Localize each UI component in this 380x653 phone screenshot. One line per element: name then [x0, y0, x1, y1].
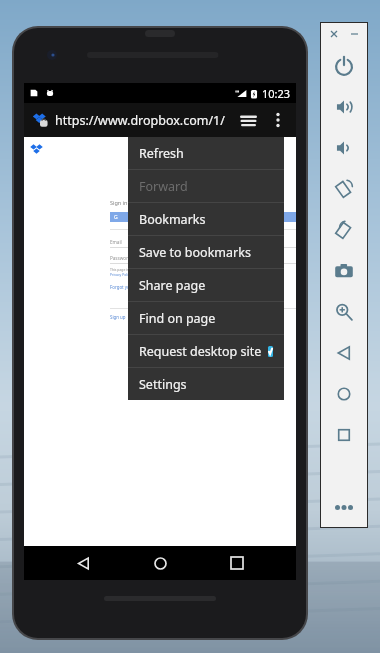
button[interactable]: Minimize — [347, 27, 361, 41]
button[interactable]: More — [321, 487, 367, 527]
staticText: Request desktop site — [139, 343, 262, 360]
staticText: Forgot your password? — [110, 284, 158, 290]
button[interactable]: Rotate right — [321, 209, 367, 250]
button[interactable]: Request desktop site — [128, 335, 284, 367]
staticText: Refresh — [139, 145, 184, 162]
button[interactable]: G — [110, 212, 296, 222]
button[interactable]: Zoom — [321, 291, 367, 332]
button[interactable]: Home — [321, 373, 367, 414]
button[interactable]: Settings — [128, 368, 284, 400]
staticText: Email — [110, 239, 122, 245]
button[interactable]: Power — [321, 45, 367, 86]
staticText: Save to bookmarks — [139, 244, 251, 261]
button[interactable]: Recent apps — [321, 414, 367, 455]
button[interactable]: More options — [263, 105, 293, 135]
button[interactable]: Home — [142, 546, 178, 580]
button[interactable]: Tabs — [233, 105, 263, 135]
staticText: Sign in to Dropbox — [110, 199, 159, 206]
button[interactable]: Volume up — [321, 86, 367, 127]
staticText: Privacy Policy and Terms — [110, 272, 149, 277]
button[interactable]: Volume down — [321, 127, 367, 168]
button[interactable]: Recent apps — [219, 546, 255, 580]
button[interactable]: Save to bookmarks — [128, 236, 284, 268]
button[interactable]: Find on page — [128, 302, 284, 334]
staticText: https://www.dropbox.com/1/con — [55, 112, 233, 129]
button[interactable]: Forward — [128, 170, 284, 202]
staticText: G — [114, 214, 118, 221]
button[interactable]: Take screenshot — [321, 250, 367, 291]
staticText: Share page — [139, 277, 206, 294]
staticText: Password — [110, 255, 131, 261]
staticText: 10:23 — [262, 86, 291, 101]
staticText: Forward — [139, 178, 188, 195]
staticText: Bookmarks — [139, 211, 206, 228]
button[interactable]: Refresh — [128, 137, 284, 169]
staticText: This page is protected by reCAPTCHA — [110, 267, 169, 272]
staticText: Find on page — [139, 310, 216, 327]
button[interactable]: Back — [65, 546, 101, 580]
button[interactable]: Back — [321, 332, 367, 373]
button[interactable]: Close — [327, 27, 341, 41]
staticText: Sign up — [110, 314, 126, 320]
button[interactable]: Share page — [128, 269, 284, 301]
staticText: Settings — [139, 376, 187, 393]
button[interactable]: Bookmarks — [128, 203, 284, 235]
button[interactable]: Rotate left — [321, 168, 367, 209]
